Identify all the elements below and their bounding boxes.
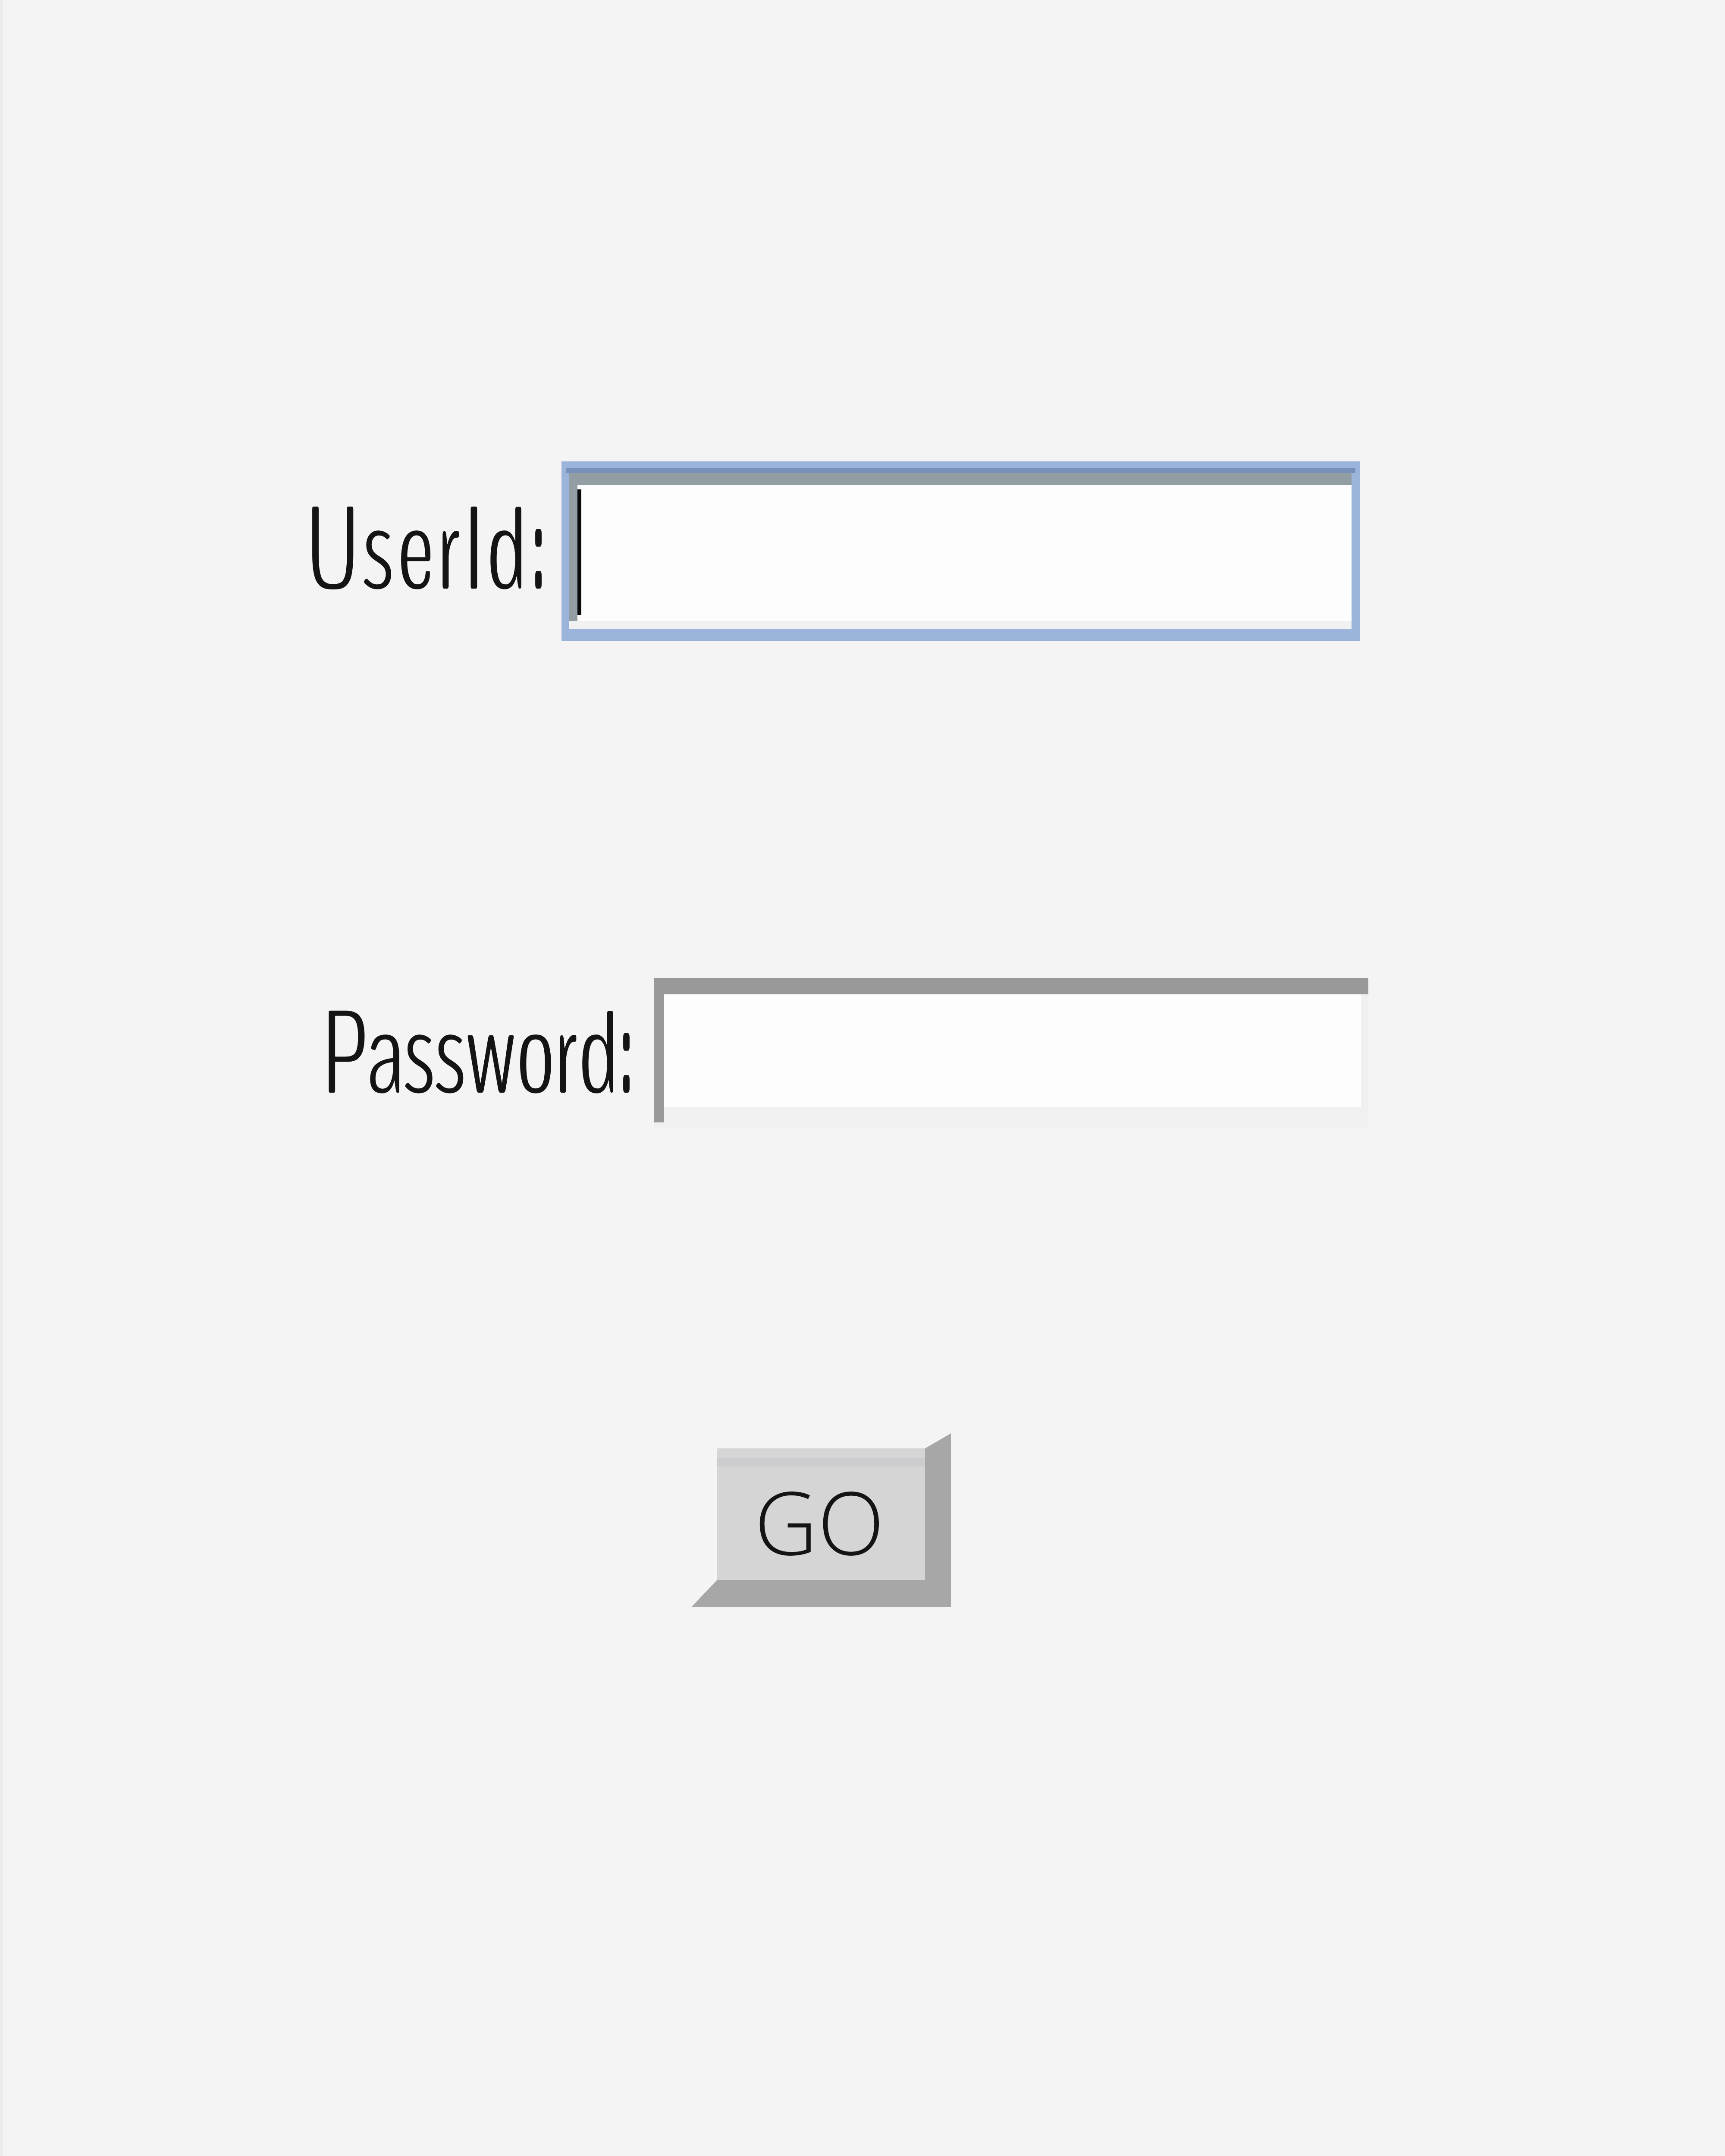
button[interactable]: Password text field — [654, 978, 1368, 1128]
staticText: UserId: — [307, 473, 550, 630]
button[interactable]: UserId text field — [561, 461, 1360, 641]
staticText: GO — [754, 1461, 884, 1580]
button[interactable]: GO — [691, 1433, 951, 1607]
staticText: Password: — [323, 978, 634, 1134]
